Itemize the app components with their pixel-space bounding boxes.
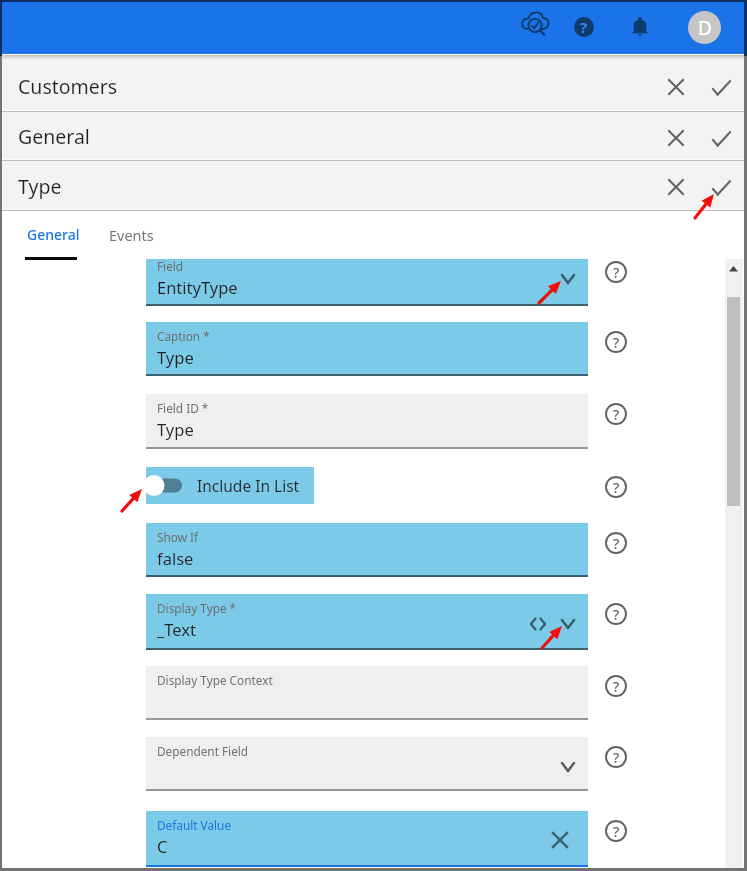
staticText: ? bbox=[613, 748, 620, 767]
button[interactable]: Display Type * bbox=[146, 594, 588, 650]
button[interactable]: Confirm Type bbox=[706, 173, 734, 201]
staticText: ? bbox=[613, 534, 620, 553]
button[interactable]: Cloud search bbox=[519, 8, 551, 38]
staticText: D bbox=[698, 15, 712, 41]
button[interactable]: Confirm General bbox=[706, 124, 734, 152]
button[interactable]: Help bbox=[574, 17, 594, 37]
staticText: ? bbox=[613, 677, 620, 696]
button[interactable]: General bbox=[17, 211, 86, 259]
button[interactable]: Help for Default Value bbox=[600, 815, 632, 847]
button[interactable]: Help for Show If bbox=[600, 527, 632, 559]
staticText: General bbox=[27, 225, 80, 244]
button[interactable]: Close General bbox=[662, 124, 690, 152]
button[interactable]: Open Display Type * bbox=[559, 615, 577, 633]
staticText: _Text bbox=[157, 618, 197, 640]
button[interactable]: Field ID * bbox=[146, 394, 588, 449]
button[interactable]: Dependent Field bbox=[146, 737, 588, 791]
button[interactable]: Type bbox=[0, 161, 747, 211]
staticText: ? bbox=[580, 17, 588, 37]
staticText: Dependent Field bbox=[157, 743, 249, 759]
button[interactable]: Close Type bbox=[662, 173, 690, 201]
staticText: ? bbox=[613, 478, 620, 497]
button[interactable]: General bbox=[0, 112, 747, 161]
staticText: Field bbox=[157, 259, 184, 274]
button[interactable]: Help for Display Type Context bbox=[600, 670, 632, 702]
staticText: Include In List bbox=[197, 475, 300, 496]
button[interactable]: Default Value bbox=[146, 811, 588, 867]
staticText: General bbox=[18, 123, 90, 150]
button[interactable]: Show If bbox=[146, 523, 588, 577]
button[interactable]: Notifications bbox=[631, 16, 649, 38]
button[interactable]: Help for Display Type * bbox=[600, 598, 632, 630]
staticText: ? bbox=[613, 333, 620, 352]
button[interactable]: Code editor bbox=[529, 615, 551, 633]
staticText: Display Type Context bbox=[157, 672, 273, 688]
staticText: Type bbox=[18, 173, 62, 200]
staticText: Events bbox=[109, 225, 154, 245]
staticText: Type bbox=[157, 346, 194, 368]
staticText: Show If bbox=[157, 529, 199, 545]
button[interactable]: Caption * bbox=[146, 322, 588, 376]
button[interactable]: Scroll bbox=[725, 259, 743, 869]
button[interactable]: Help for Field ID * bbox=[600, 398, 632, 430]
staticText: ? bbox=[613, 822, 620, 841]
button[interactable]: Events bbox=[99, 211, 165, 259]
button[interactable]: Help for Dependent Field bbox=[600, 741, 632, 773]
staticText: Caption * bbox=[157, 328, 210, 344]
button[interactable]: Open Dependent Field bbox=[559, 758, 577, 776]
button[interactable]: Include In List bbox=[146, 467, 314, 504]
button[interactable]: Field bbox=[146, 259, 588, 306]
staticText: Display Type * bbox=[157, 600, 237, 616]
button[interactable]: Close Customers bbox=[662, 73, 690, 101]
staticText: C bbox=[157, 835, 168, 857]
button[interactable]: Help for Caption * bbox=[600, 326, 632, 358]
button[interactable]: Clear bbox=[549, 829, 571, 851]
staticText: ? bbox=[613, 405, 620, 424]
button[interactable]: Display Type Context bbox=[146, 666, 588, 720]
staticText: false bbox=[157, 547, 194, 569]
button[interactable]: Help for Include In List bbox=[600, 471, 632, 503]
button[interactable]: Confirm Customers bbox=[706, 73, 734, 101]
staticText: Type bbox=[157, 418, 194, 440]
staticText: ? bbox=[613, 605, 620, 624]
staticText: EntityType bbox=[157, 276, 238, 298]
staticText: ? bbox=[613, 263, 620, 282]
staticText: Field ID * bbox=[157, 400, 209, 416]
button[interactable]: Open Field bbox=[559, 270, 577, 288]
button[interactable]: Account bbox=[688, 11, 721, 44]
staticText: Default Value bbox=[157, 817, 232, 833]
button[interactable]: Customers bbox=[0, 60, 747, 112]
button[interactable]: Help for Field bbox=[600, 259, 632, 288]
staticText: Customers bbox=[18, 73, 118, 100]
